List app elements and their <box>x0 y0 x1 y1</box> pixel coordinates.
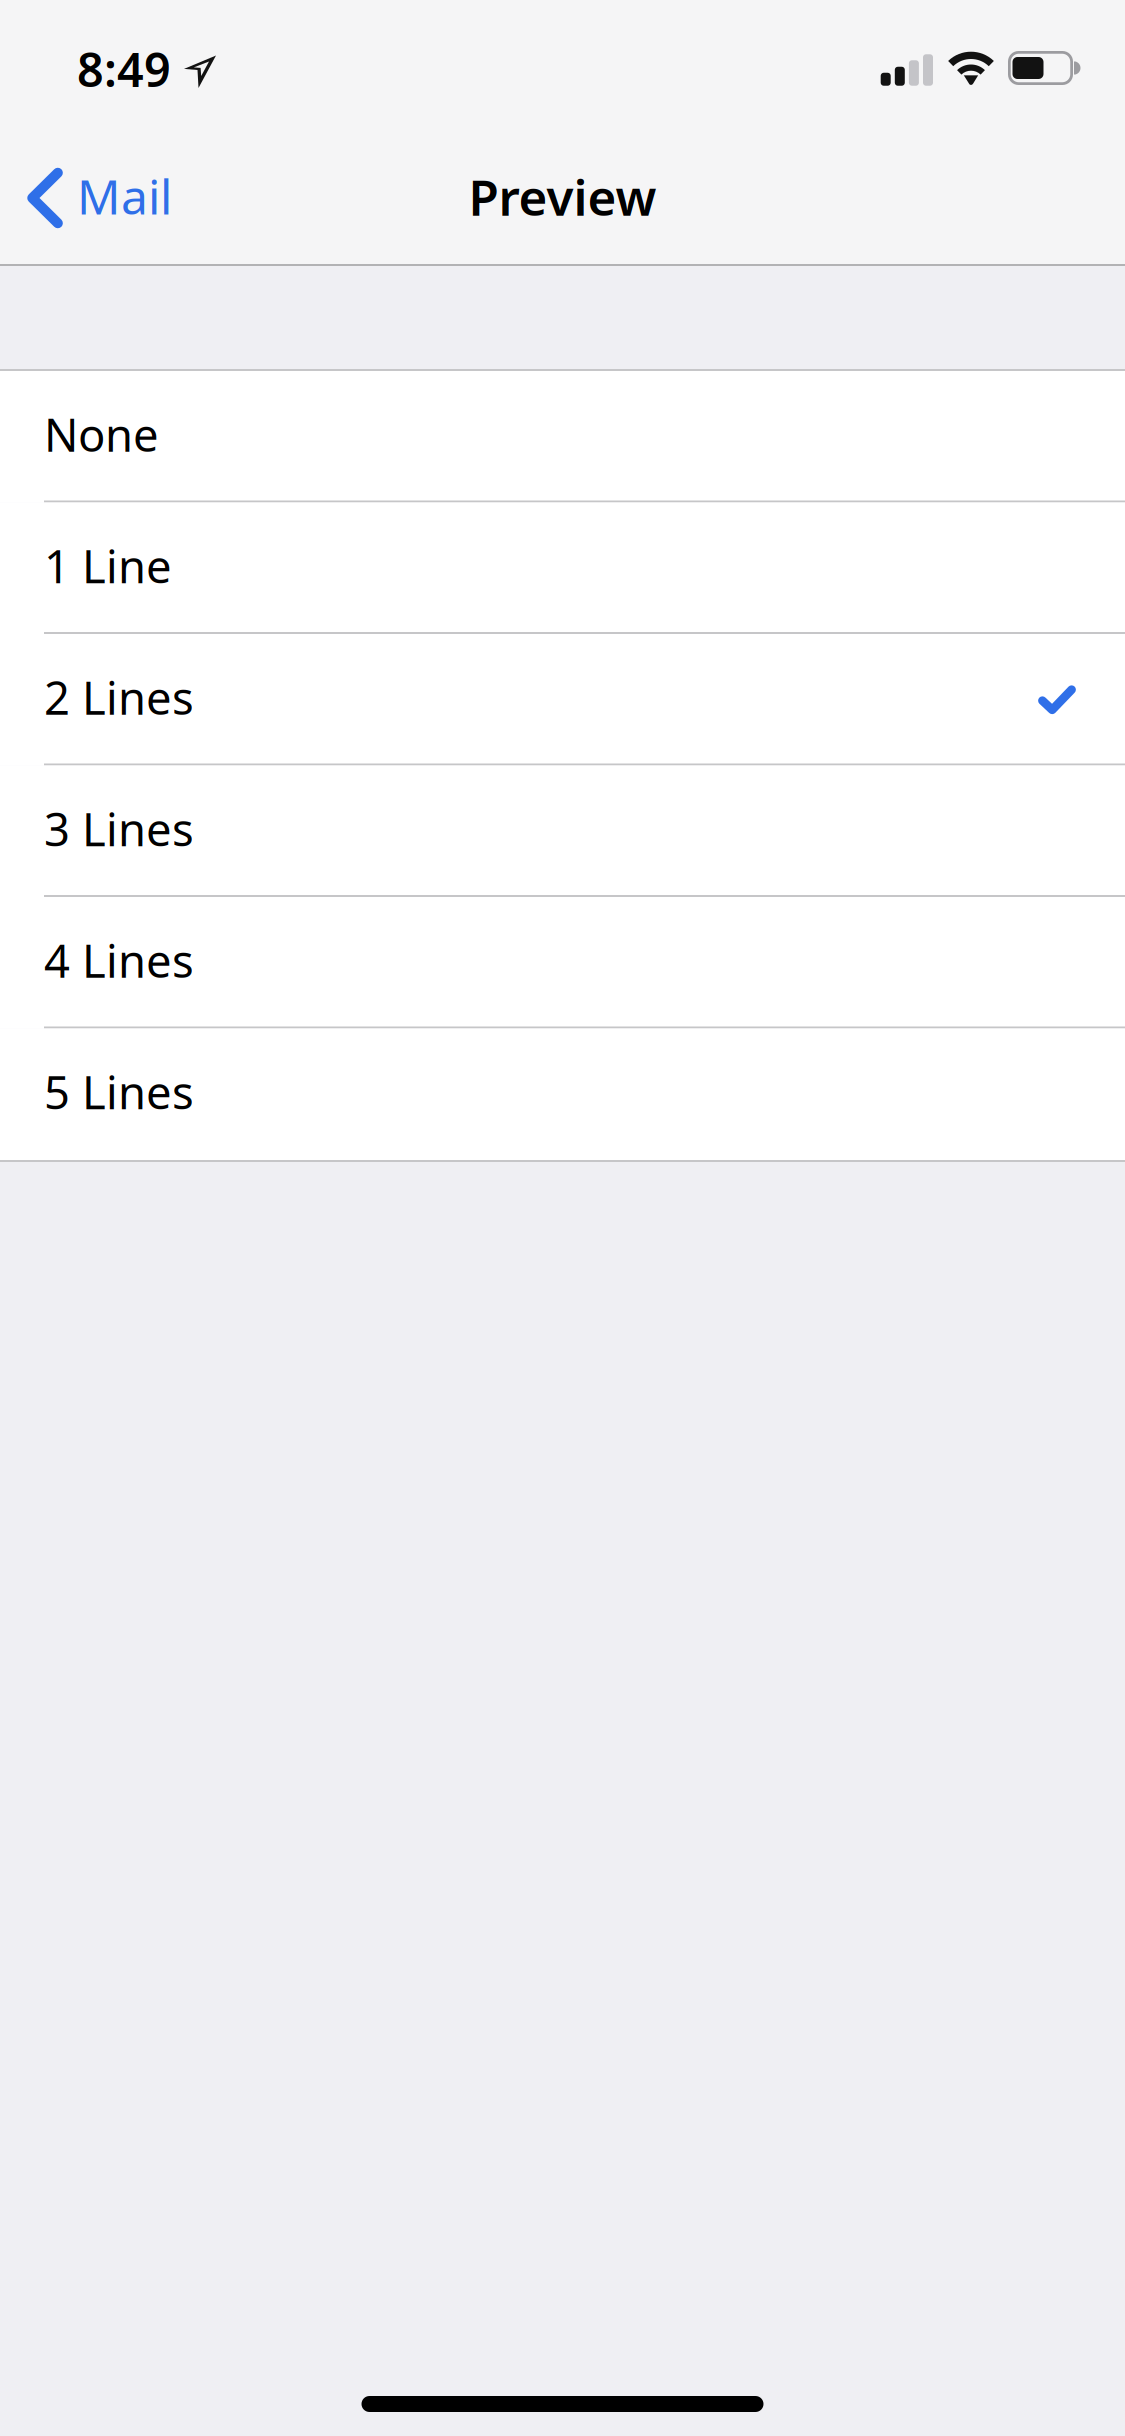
staticText: 2 Lines <box>44 667 194 727</box>
button[interactable]: 2 Lines <box>0 634 1125 765</box>
staticText: Preview <box>468 164 656 229</box>
staticText: 8:49 <box>77 38 171 100</box>
staticText: 1 Line <box>44 536 172 596</box>
button[interactable]: 1 Line <box>0 502 1125 634</box>
button[interactable]: 4 Lines <box>0 897 1125 1028</box>
button[interactable]: Mail <box>0 132 196 264</box>
staticText: 5 Lines <box>44 1062 194 1122</box>
button[interactable]: 5 Lines <box>0 1028 1125 1160</box>
staticText: 3 Lines <box>44 799 194 859</box>
staticText: None <box>44 404 159 464</box>
button[interactable]: None <box>0 371 1125 502</box>
staticText: Mail <box>77 164 172 228</box>
staticText: 4 Lines <box>44 930 194 990</box>
button[interactable]: 3 Lines <box>0 765 1125 897</box>
